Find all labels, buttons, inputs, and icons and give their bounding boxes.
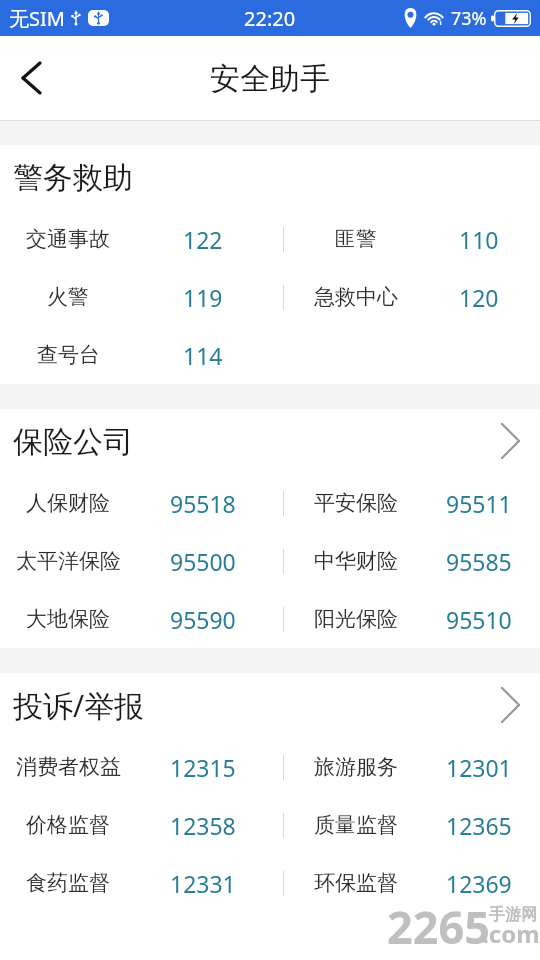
staticText: 环保监督 <box>314 870 398 896</box>
staticText: 2265 <box>387 896 490 957</box>
staticText: 平安保险 <box>314 490 398 516</box>
button[interactable]: 交通事故 <box>0 210 283 268</box>
staticText: 交通事故 <box>26 226 110 252</box>
button[interactable]: 火警 <box>0 268 283 326</box>
button[interactable]: 阳光保险 <box>284 590 540 648</box>
button[interactable]: 价格监督 <box>0 796 283 854</box>
staticText: 无SIM <box>9 5 65 32</box>
staticText: 12315 <box>170 752 236 783</box>
staticText: 太平洋保险 <box>16 548 121 574</box>
staticText: 120 <box>459 282 499 313</box>
button[interactable]: More <box>481 412 539 470</box>
button[interactable]: 环保监督 <box>284 854 540 912</box>
staticText: 12358 <box>170 810 236 841</box>
staticText: 95511 <box>446 488 512 519</box>
button[interactable]: 食药监督 <box>0 854 283 912</box>
staticText: 95590 <box>170 604 236 635</box>
staticText: 95585 <box>446 546 512 577</box>
staticText: 人保财险 <box>26 490 110 516</box>
staticText: 95518 <box>170 488 236 519</box>
staticText: 价格监督 <box>26 812 110 838</box>
button[interactable]: 急救中心 <box>284 268 540 326</box>
staticText: .com <box>482 917 540 950</box>
staticText: 查号台 <box>37 342 100 368</box>
button[interactable]: 人保财险 <box>0 474 283 532</box>
button[interactable]: 平安保险 <box>284 474 540 532</box>
staticText: 中华财险 <box>314 548 398 574</box>
staticText: 大地保险 <box>26 606 110 632</box>
staticText: 12365 <box>446 810 512 841</box>
staticText: 投诉/举报 <box>13 685 145 726</box>
staticText: 22:20 <box>244 5 296 32</box>
staticText: 食药监督 <box>26 870 110 896</box>
button[interactable]: 太平洋保险 <box>0 532 283 590</box>
staticText: 质量监督 <box>314 812 398 838</box>
staticText: 火警 <box>47 284 89 310</box>
staticText: 12301 <box>446 752 512 783</box>
staticText: 12369 <box>446 868 512 899</box>
staticText: 旅游服务 <box>314 754 398 780</box>
staticText: 73% <box>451 6 487 31</box>
staticText: 阳光保险 <box>314 606 398 632</box>
button[interactable]: 中华财险 <box>284 532 540 590</box>
staticText: 119 <box>183 282 223 313</box>
button[interactable]: 匪警 <box>284 210 540 268</box>
staticText: 警务救助 <box>13 159 133 197</box>
staticText: 110 <box>459 224 499 255</box>
button[interactable]: 查号台 <box>0 326 283 384</box>
staticText: 95510 <box>446 604 512 635</box>
button[interactable]: 质量监督 <box>284 796 540 854</box>
staticText: 匪警 <box>335 226 377 252</box>
staticText: 122 <box>183 224 223 255</box>
button[interactable]: 大地保险 <box>0 590 283 648</box>
staticText: 95500 <box>170 546 236 577</box>
button[interactable]: More <box>481 676 539 734</box>
staticText: 急救中心 <box>314 284 398 310</box>
staticText: 手游网 <box>489 905 537 925</box>
staticText: 安全助手 <box>210 60 330 98</box>
staticText: 消费者权益 <box>16 754 121 780</box>
staticText: 114 <box>183 340 223 371</box>
button[interactable]: 消费者权益 <box>0 738 283 796</box>
staticText: 保险公司 <box>13 423 133 461</box>
button[interactable]: 旅游服务 <box>284 738 540 796</box>
button[interactable]: Back <box>0 47 62 109</box>
staticText: 12331 <box>170 868 236 899</box>
